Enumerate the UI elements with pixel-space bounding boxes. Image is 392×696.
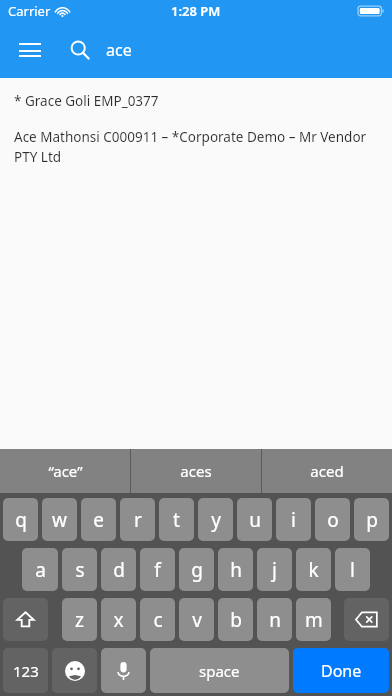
staticText: o: [327, 507, 339, 533]
button[interactable]: q: [3, 498, 38, 541]
button[interactable]: y: [198, 498, 233, 541]
staticText: f: [154, 557, 161, 583]
staticText: n: [269, 607, 281, 633]
staticText: r: [134, 507, 142, 533]
button[interactable]: Menu: [8, 28, 52, 72]
button[interactable]: o: [315, 498, 350, 541]
button[interactable]: aced: [262, 449, 392, 493]
button[interactable]: * Grace Goli EMP_0377: [14, 92, 378, 110]
button[interactable]: t: [159, 498, 194, 541]
button[interactable]: Voice input: [101, 648, 146, 693]
staticText: Carrier: [8, 2, 51, 20]
button[interactable]: g: [179, 548, 214, 591]
button[interactable]: Backspace: [344, 598, 389, 641]
staticText: p: [366, 507, 378, 533]
staticText: m: [305, 607, 323, 633]
button[interactable]: u: [237, 498, 272, 541]
staticText: ace: [106, 39, 132, 61]
staticText: Done: [321, 660, 362, 682]
button[interactable]: r: [120, 498, 155, 541]
staticText: Ace Mathonsi C000911 – *Corporate Demo –…: [14, 128, 378, 166]
button[interactable]: “ace”: [0, 449, 130, 493]
staticText: c: [153, 607, 163, 633]
staticText: aces: [180, 461, 212, 481]
staticText: “ace”: [48, 461, 83, 481]
button[interactable]: s: [62, 548, 97, 591]
staticText: e: [93, 507, 104, 533]
staticText: d: [113, 557, 125, 583]
button[interactable]: i: [276, 498, 311, 541]
button[interactable]: j: [257, 548, 292, 591]
button[interactable]: h: [218, 548, 253, 591]
button[interactable]: b: [218, 598, 253, 641]
button[interactable]: a: [22, 548, 58, 591]
button[interactable]: w: [42, 498, 77, 541]
button[interactable]: k: [296, 548, 331, 591]
button[interactable]: 123: [3, 648, 48, 693]
button[interactable]: space: [150, 648, 289, 693]
staticText: w: [52, 507, 67, 533]
staticText: a: [35, 557, 46, 583]
staticText: k: [308, 557, 319, 583]
staticText: x: [113, 607, 124, 633]
staticText: s: [75, 557, 85, 583]
button[interactable]: Shift: [3, 598, 48, 641]
button[interactable]: f: [140, 548, 175, 591]
button[interactable]: l: [335, 548, 370, 591]
staticText: v: [192, 607, 202, 633]
button[interactable]: Done: [293, 648, 389, 693]
staticText: 123: [13, 661, 39, 681]
staticText: j: [272, 557, 277, 583]
staticText: i: [291, 507, 296, 533]
staticText: q: [15, 507, 27, 533]
button[interactable]: p: [354, 498, 389, 541]
button[interactable]: Emoji: [52, 648, 97, 693]
button[interactable]: n: [257, 598, 292, 641]
button[interactable]: Ace Mathonsi C000911 – *Corporate Demo –…: [14, 128, 378, 166]
staticText: b: [230, 607, 242, 633]
staticText: * Grace Goli EMP_0377: [14, 92, 159, 110]
staticText: z: [75, 607, 84, 633]
staticText: t: [173, 507, 180, 533]
staticText: l: [350, 557, 355, 583]
staticText: space: [199, 661, 240, 681]
button[interactable]: v: [179, 598, 214, 641]
button[interactable]: e: [81, 498, 116, 541]
button[interactable]: m: [296, 598, 331, 641]
staticText: g: [191, 557, 203, 583]
staticText: y: [211, 507, 221, 533]
button[interactable]: Search: [60, 30, 100, 70]
button[interactable]: aces: [131, 449, 261, 493]
staticText: h: [230, 557, 242, 583]
staticText: 1:28 PM: [171, 2, 221, 20]
button[interactable]: z: [62, 598, 97, 641]
staticText: u: [249, 507, 261, 533]
staticText: aced: [310, 461, 344, 481]
button[interactable]: x: [101, 598, 136, 641]
button[interactable]: d: [101, 548, 136, 591]
button[interactable]: c: [140, 598, 175, 641]
